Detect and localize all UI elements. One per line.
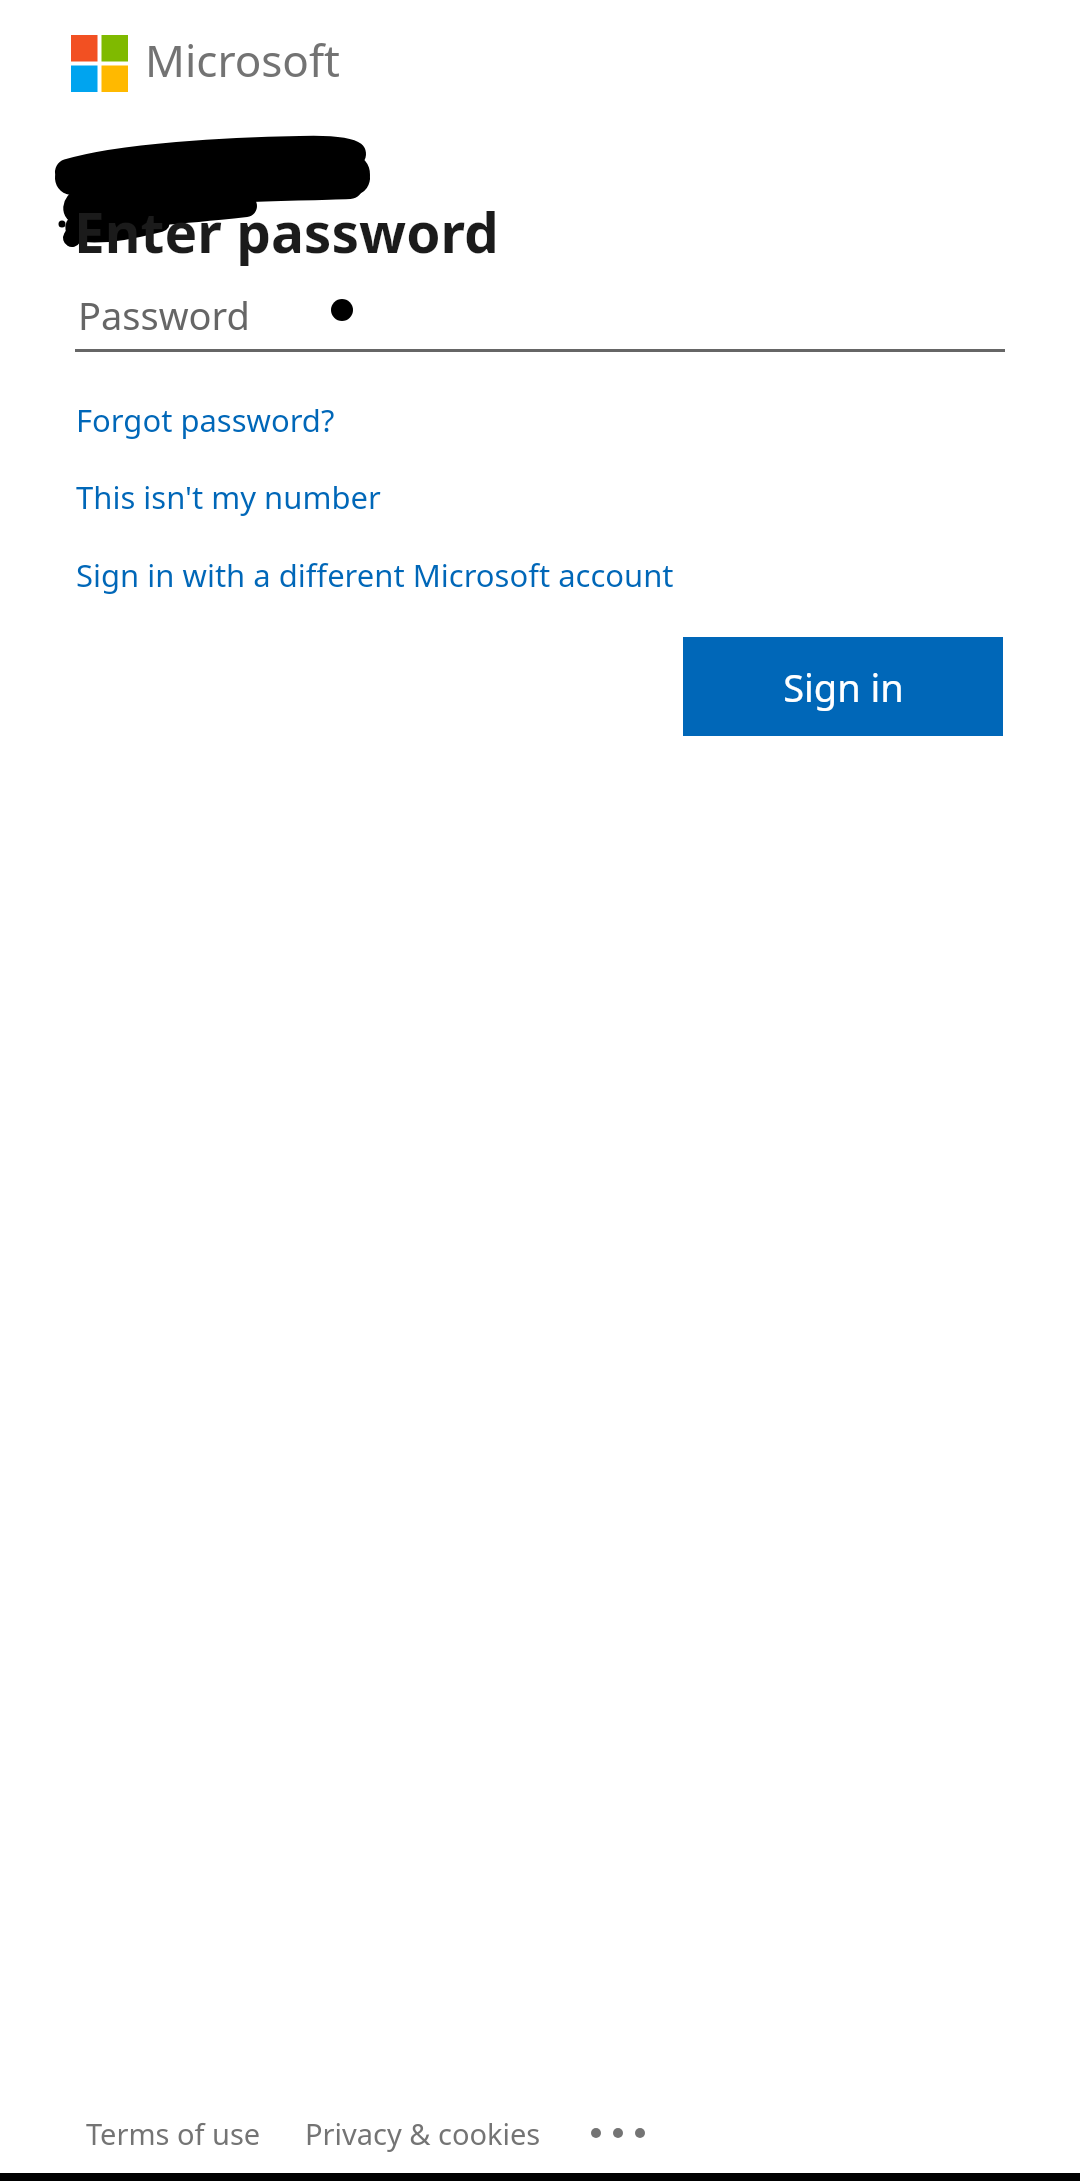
staticText: Enter password xyxy=(74,194,499,269)
staticText: Forgot password? xyxy=(76,399,335,441)
button[interactable]: This isn't my number xyxy=(74,470,383,524)
button[interactable]: Sign in xyxy=(683,637,1003,736)
button[interactable]: More options xyxy=(585,2111,651,2155)
button[interactable]: Privacy & cookies xyxy=(305,2114,541,2153)
staticText: This isn't my number xyxy=(76,476,381,518)
button[interactable]: Forgot password? xyxy=(74,393,337,447)
button[interactable]: Terms of use xyxy=(86,2114,261,2153)
staticText: Sign in xyxy=(783,661,904,713)
staticText: Terms of use xyxy=(86,2114,261,2153)
button[interactable]: Sign in with a different Microsoft accou… xyxy=(74,548,676,602)
other: Microsoft xyxy=(71,33,341,93)
button[interactable]: Password xyxy=(75,282,1005,348)
staticText: Microsoft xyxy=(145,30,341,90)
staticText: Password xyxy=(78,289,250,341)
staticText: Sign in with a different Microsoft accou… xyxy=(76,554,674,596)
staticText: Privacy & cookies xyxy=(305,2114,541,2153)
